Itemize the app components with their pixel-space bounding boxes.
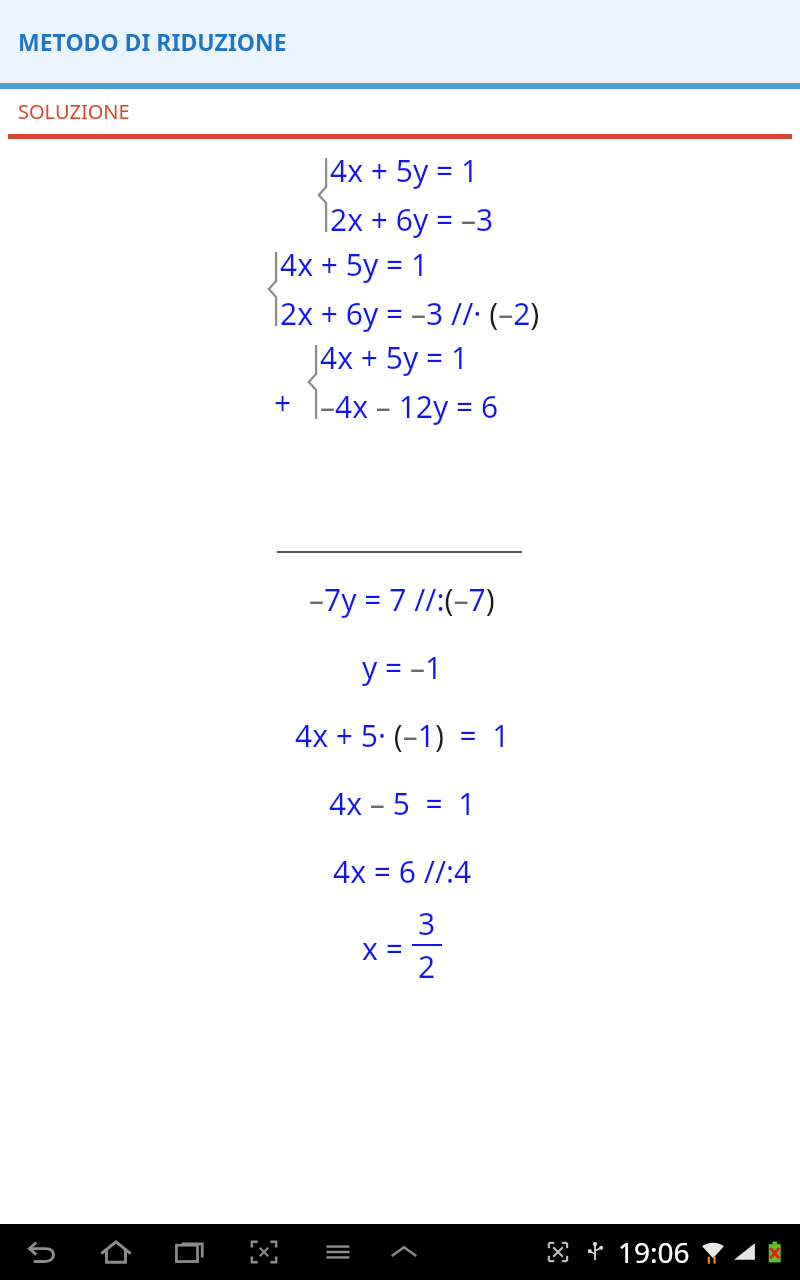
button[interactable]: Menu — [316, 1230, 360, 1274]
staticText: 2x + 6y = –3 //· (–2) — [280, 293, 540, 334]
staticText: 4x = 6 //:4 — [333, 851, 472, 892]
staticText: 4x – 5 = 1 — [329, 783, 476, 824]
staticText: –4x – 12y = 6 — [320, 386, 499, 427]
staticText: 19:06 — [618, 1233, 690, 1271]
button[interactable]: METODO DI RIDUZIONE — [0, 0, 800, 83]
staticText: + — [274, 382, 292, 423]
staticText: 3 — [418, 903, 436, 944]
staticText: 4x + 5y = 1 — [280, 244, 429, 285]
button[interactable]: Expand — [382, 1230, 426, 1274]
staticText: 2 — [418, 946, 436, 987]
staticText: 2x + 6y = –3 — [330, 199, 494, 240]
staticText: SOLUZIONE — [18, 98, 130, 125]
staticText: x = — [362, 928, 403, 969]
button[interactable]: Home — [94, 1230, 138, 1274]
staticText: 4x + 5y = 1 — [320, 337, 469, 378]
staticText: 4x + 5y = 1 — [330, 150, 479, 191]
button[interactable]: SOLUZIONE — [0, 89, 800, 134]
staticText: –7y = 7 //:(–7) — [309, 579, 495, 620]
button[interactable]: Screenshot — [242, 1230, 286, 1274]
staticText: 4x + 5· (–1) = 1 — [295, 715, 510, 756]
staticText: METODO DI RIDUZIONE — [18, 26, 287, 57]
staticText: y = –1 — [362, 647, 443, 688]
button[interactable]: Back — [20, 1230, 64, 1274]
button[interactable]: Recent apps — [168, 1230, 212, 1274]
